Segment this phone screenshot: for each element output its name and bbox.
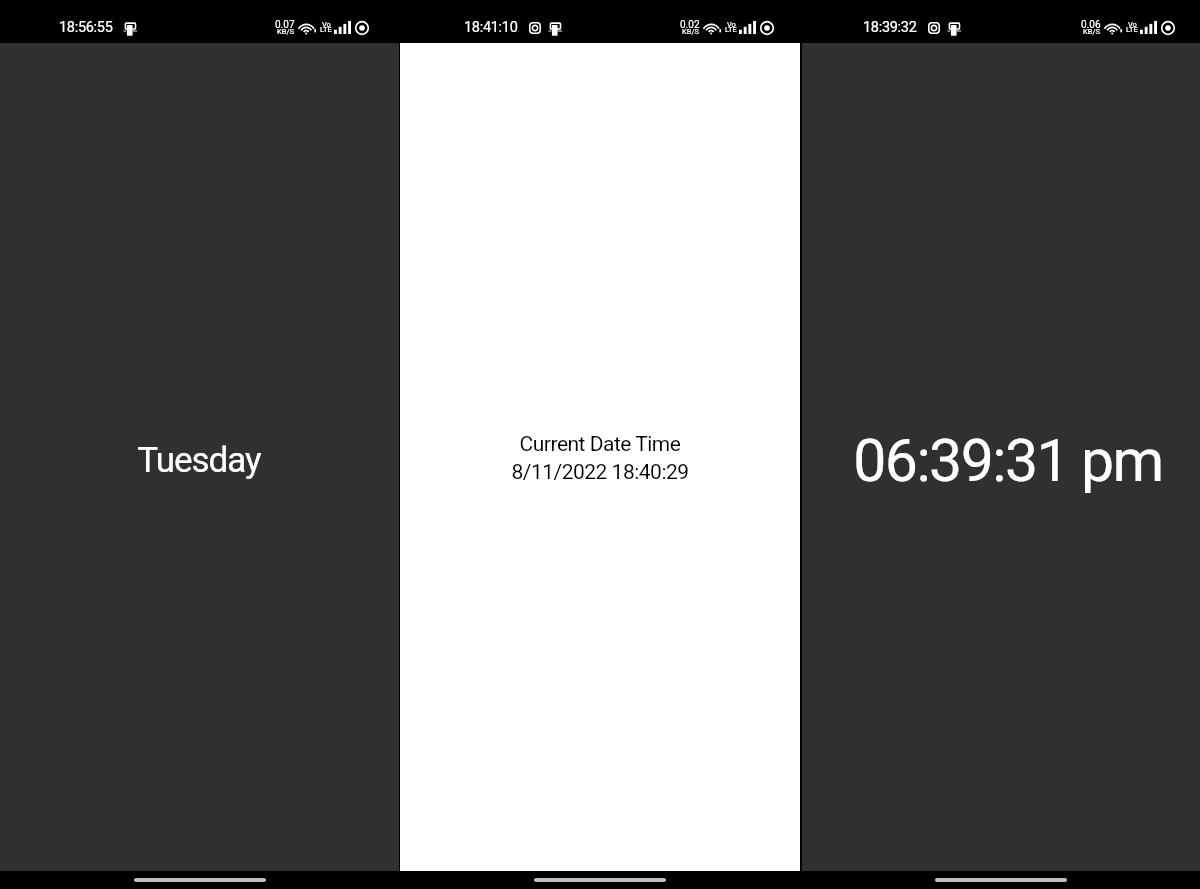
button[interactable]: Tuesday: [0, 43, 399, 871]
other: Camera in use: [928, 22, 940, 34]
staticText: KB/S: [682, 27, 699, 36]
button[interactable]: Current Date Time 8/11/2022 18:40:29: [400, 43, 800, 871]
other: Recording: [355, 21, 369, 35]
staticText: 18:41:10: [464, 19, 518, 36]
other: Wi-Fi: [704, 19, 722, 35]
button[interactable]: Current Date Time 8/11/2022 18:40:29: [511, 432, 689, 484]
other: Mobile signal: [1140, 21, 1157, 34]
staticText: 0.02: [680, 19, 700, 31]
staticText: 0.07: [275, 19, 295, 31]
staticText: Vo: [1128, 20, 1137, 29]
staticText: KB/S: [1083, 27, 1100, 36]
staticText: LTE: [1126, 25, 1138, 34]
staticText: 18:56:55: [59, 19, 113, 36]
staticText: LTE: [320, 25, 332, 34]
staticText: Vo: [322, 20, 331, 29]
staticText: 18:39:32: [863, 19, 917, 36]
staticText: LTE: [725, 25, 737, 34]
other: Home gesture handle: [534, 878, 666, 882]
other: Wi-Fi: [1105, 19, 1123, 35]
button[interactable]: Tuesday: [137, 440, 261, 481]
other: Split screen: [947, 21, 962, 36]
staticText: KB/S: [277, 27, 294, 36]
other: Wi-Fi: [299, 19, 317, 35]
staticText: Vo: [727, 20, 736, 29]
other: Recording: [1161, 21, 1175, 35]
other: Mobile signal: [739, 21, 756, 34]
other: Mobile signal: [334, 21, 351, 34]
other: Split screen: [548, 21, 563, 36]
other: Home gesture handle: [134, 878, 266, 882]
staticText: 0.06: [1081, 19, 1101, 31]
button[interactable]: 06:39:31 pm: [853, 426, 1163, 495]
other: Home gesture handle: [935, 878, 1067, 882]
button[interactable]: 06:39:31 pm: [802, 43, 1200, 871]
other: Camera in use: [529, 22, 541, 34]
other: Split screen: [123, 21, 138, 36]
other: Recording: [760, 21, 774, 35]
